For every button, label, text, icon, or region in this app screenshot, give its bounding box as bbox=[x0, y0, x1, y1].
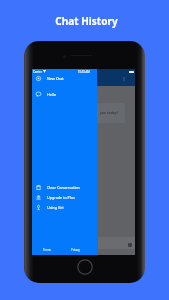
button[interactable]: Terms bbox=[43, 248, 51, 252]
button[interactable]: Send bbox=[128, 243, 132, 247]
staticText: Upgrade to Plus bbox=[47, 195, 75, 200]
button[interactable]: Upgrade to Plus bbox=[32, 193, 97, 202]
staticText: Hello bbox=[47, 92, 56, 97]
button[interactable]: Clear Conversation bbox=[32, 183, 97, 192]
staticText: Chat History bbox=[2, 14, 169, 28]
staticText: 10:33 AM bbox=[78, 70, 90, 74]
staticText: Using Siri bbox=[47, 205, 64, 210]
button[interactable]: Privacy bbox=[71, 248, 80, 252]
staticText: you today? bbox=[100, 110, 119, 115]
button[interactable]: Using Siri bbox=[32, 203, 97, 212]
staticText: Clear Conversation bbox=[47, 185, 80, 190]
staticText: New Chat bbox=[47, 76, 64, 81]
button[interactable]: Send bbox=[98, 237, 135, 249]
button[interactable]: New Chat bbox=[32, 74, 97, 83]
button[interactable]: Hello bbox=[32, 90, 97, 99]
staticText: Carrier bbox=[33, 70, 42, 74]
